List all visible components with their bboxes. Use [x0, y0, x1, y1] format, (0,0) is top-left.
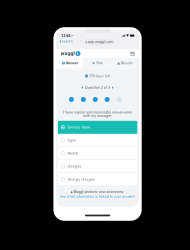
staticText: ✓	[71, 34, 74, 37]
staticText: I have regular and meaningful one-on-one…	[63, 110, 132, 118]
button[interactable]: Question	[81, 97, 86, 102]
staticText: Search	[62, 40, 73, 43]
button[interactable]: Menu	[129, 49, 136, 58]
button[interactable]: Search	[60, 40, 73, 43]
staticText: app.waggl.com	[88, 40, 113, 44]
button[interactable]: See what information is linked to your a…	[60, 195, 135, 198]
staticText: Answer	[66, 61, 78, 65]
staticText: 269 days left	[89, 74, 110, 78]
staticText: Vote	[96, 61, 103, 65]
staticText: Results	[121, 61, 133, 65]
button[interactable]: Answer	[56, 58, 84, 68]
staticText: Agree	[67, 138, 76, 142]
staticText: Neutral	[67, 151, 78, 155]
staticText: Strongly Agree	[67, 125, 90, 129]
button[interactable]: Question	[105, 97, 110, 102]
staticText: See what information is linked to your a…	[60, 195, 135, 198]
staticText: waggl	[60, 51, 74, 56]
button[interactable]: Question	[93, 97, 98, 102]
staticText: 12:54	[61, 33, 70, 38]
button[interactable]: Disagree	[58, 160, 137, 173]
button[interactable]: Results	[111, 58, 139, 68]
button[interactable]: Neutral	[58, 147, 137, 160]
button[interactable]: Previous question	[81, 86, 83, 89]
staticText: Disagree	[67, 164, 81, 168]
staticText: Question 2 of 5	[85, 85, 110, 89]
button[interactable]: Strongly Disagree	[58, 173, 137, 186]
button[interactable]: Agree	[58, 134, 137, 147]
button[interactable]: Strongly Agree	[58, 121, 137, 134]
button[interactable]: Next question	[112, 86, 114, 89]
staticText: Waggl protects your anonymity.	[73, 190, 124, 194]
button[interactable]: Question	[116, 97, 121, 102]
button[interactable]: Question	[69, 97, 74, 102]
button[interactable]: Vote	[84, 58, 111, 68]
staticText: Strongly Disagree	[67, 177, 95, 181]
